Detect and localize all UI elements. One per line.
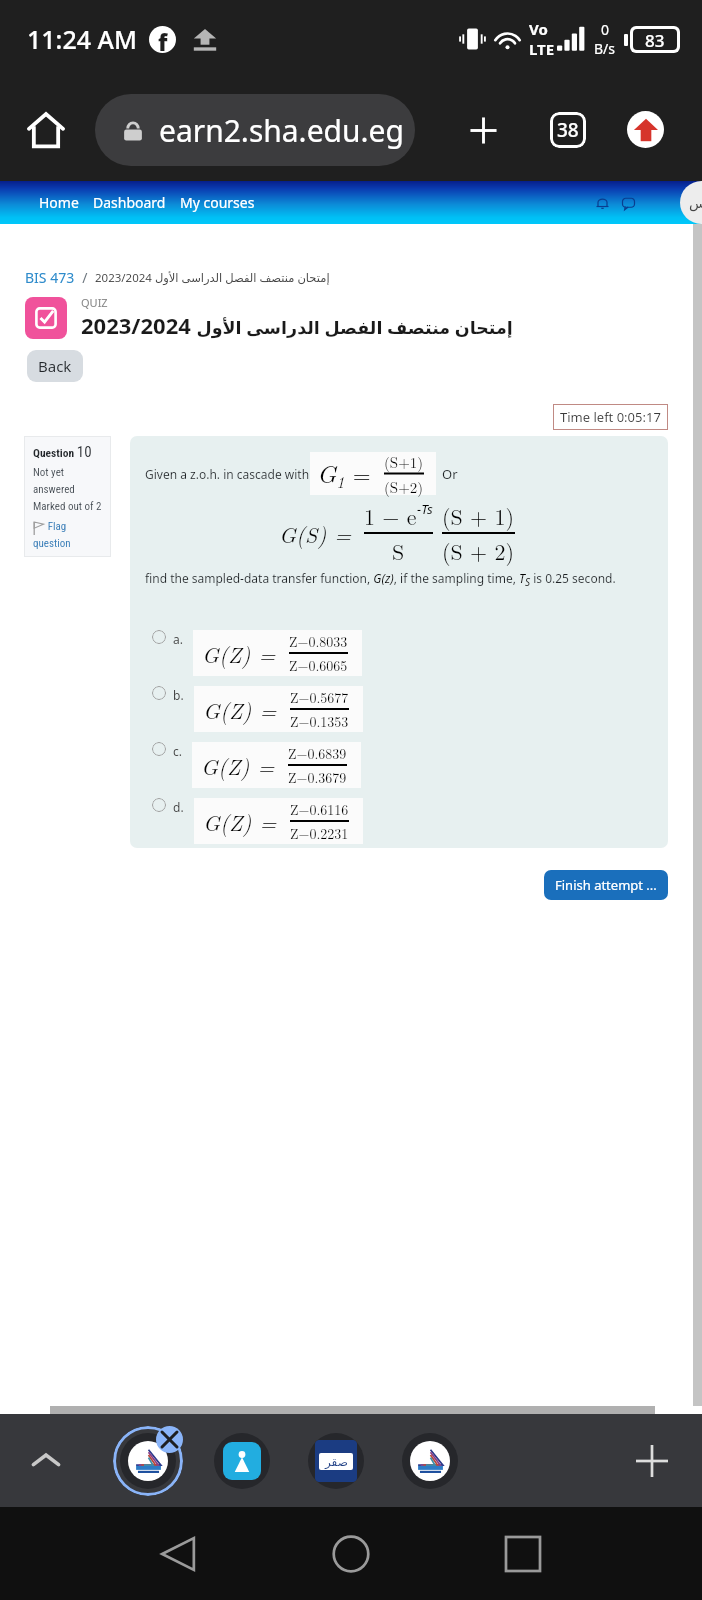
staticText: d.	[173, 799, 184, 815]
staticText: G(S) =	[279, 518, 360, 549]
staticText: =	[345, 457, 379, 490]
staticText: Z−0.5677	[290, 687, 349, 707]
staticText: 1 − e	[364, 500, 417, 531]
button[interactable]: Home page	[18, 102, 74, 158]
staticText: S	[392, 535, 405, 566]
staticText: (S+2)	[384, 476, 424, 497]
button[interactable]: Tab	[308, 1433, 364, 1489]
staticText: 83	[645, 29, 665, 50]
staticText: Z−0.2231	[290, 823, 349, 843]
staticText: 0	[601, 20, 610, 39]
button[interactable]: Downloads	[627, 111, 664, 148]
staticText: /	[75, 268, 95, 287]
button[interactable]: Home	[316, 1519, 386, 1589]
staticText: Z−0.6116	[290, 799, 349, 819]
button[interactable]: Finish attempt ...	[544, 870, 668, 900]
staticText: G(Z) =	[202, 638, 284, 669]
staticText: earn2.sha.edu.eg	[159, 110, 404, 151]
staticText: b.	[173, 687, 184, 703]
staticText: Z−0.6839	[288, 743, 347, 763]
button[interactable]: Close tab	[156, 1426, 183, 1453]
staticText: (S + 1)	[442, 500, 515, 531]
button[interactable]: earn2.sha.edu.eg	[95, 94, 415, 166]
staticText: Z−0.6065	[289, 655, 348, 675]
button[interactable]: Notifications	[589, 190, 615, 216]
button[interactable]: Recent apps	[488, 1519, 558, 1589]
staticText: Z−0.8033	[289, 631, 348, 651]
button[interactable]: Expand toolbar	[18, 1433, 74, 1489]
button[interactable]: Home	[32, 187, 86, 218]
button[interactable]: Open tabs, 38	[550, 112, 586, 148]
button[interactable]: Add tab	[624, 1433, 680, 1489]
staticText: f	[158, 26, 168, 53]
button[interactable]: b.	[145, 686, 654, 732]
staticText: Z−0.1353	[290, 711, 349, 731]
button[interactable]: User profile	[680, 181, 702, 224]
staticText: إمتحان منتصف الفصل الدراسى الأول 2023/20…	[81, 310, 513, 340]
staticText: c.	[173, 743, 182, 759]
button[interactable]: c.	[145, 742, 654, 788]
button[interactable]: Messages	[615, 190, 641, 216]
button[interactable]: Tab	[402, 1433, 458, 1489]
staticText: find the sampled-data transfer function,…	[145, 570, 616, 589]
button[interactable]: d.	[145, 798, 654, 844]
staticText: 11:24 AM	[27, 22, 137, 56]
staticText: Vo	[529, 19, 548, 39]
staticText: LTE	[529, 39, 555, 59]
staticText: إمتحان منتصف الفصل الدراسى الأول 2023/20…	[95, 270, 330, 286]
staticText: Time left 0:05:17	[560, 408, 661, 426]
staticText: G(Z) =	[201, 750, 283, 781]
staticText: QUIZ	[81, 295, 108, 310]
staticText: Question 10	[33, 443, 92, 461]
button[interactable]: Tab	[120, 1433, 176, 1489]
staticText: Back	[38, 356, 72, 376]
staticText: Marked out of 2	[33, 500, 102, 513]
staticText: B/s	[594, 39, 616, 58]
button[interactable]: Dashboard	[86, 187, 173, 218]
staticText: Given a z.o.h. in cascade with	[145, 466, 310, 482]
button[interactable]: a.	[145, 630, 654, 676]
staticText: Home	[39, 193, 79, 212]
staticText: Not yet answered	[33, 466, 75, 495]
staticText: BIS 473	[25, 268, 75, 287]
button[interactable]: New tab	[457, 104, 509, 156]
staticText: 38	[557, 117, 579, 143]
staticText: G(Z) =	[203, 694, 285, 725]
staticText: −Ts	[417, 500, 433, 518]
button[interactable]: Tab	[214, 1433, 270, 1489]
button[interactable]: Back	[27, 350, 83, 382]
staticText: G1	[317, 455, 345, 493]
staticText: Or	[442, 465, 458, 483]
staticText: Dashboard	[93, 193, 166, 212]
staticText: (S + 2)	[442, 535, 515, 566]
button[interactable]: Flag question	[33, 520, 71, 549]
staticText: جس	[689, 195, 702, 211]
staticText: Finish attempt ...	[555, 876, 657, 894]
staticText: G(Z) =	[203, 806, 285, 837]
button[interactable]: Back	[143, 1519, 213, 1589]
staticText: a.	[173, 631, 183, 647]
staticText: Flag question	[33, 520, 71, 549]
staticText: صقر	[325, 1455, 348, 1469]
staticText: (S+1)	[384, 451, 424, 472]
staticText: Z−0.3679	[288, 767, 347, 787]
button[interactable]: My courses	[173, 187, 262, 218]
staticText: My courses	[180, 193, 255, 212]
